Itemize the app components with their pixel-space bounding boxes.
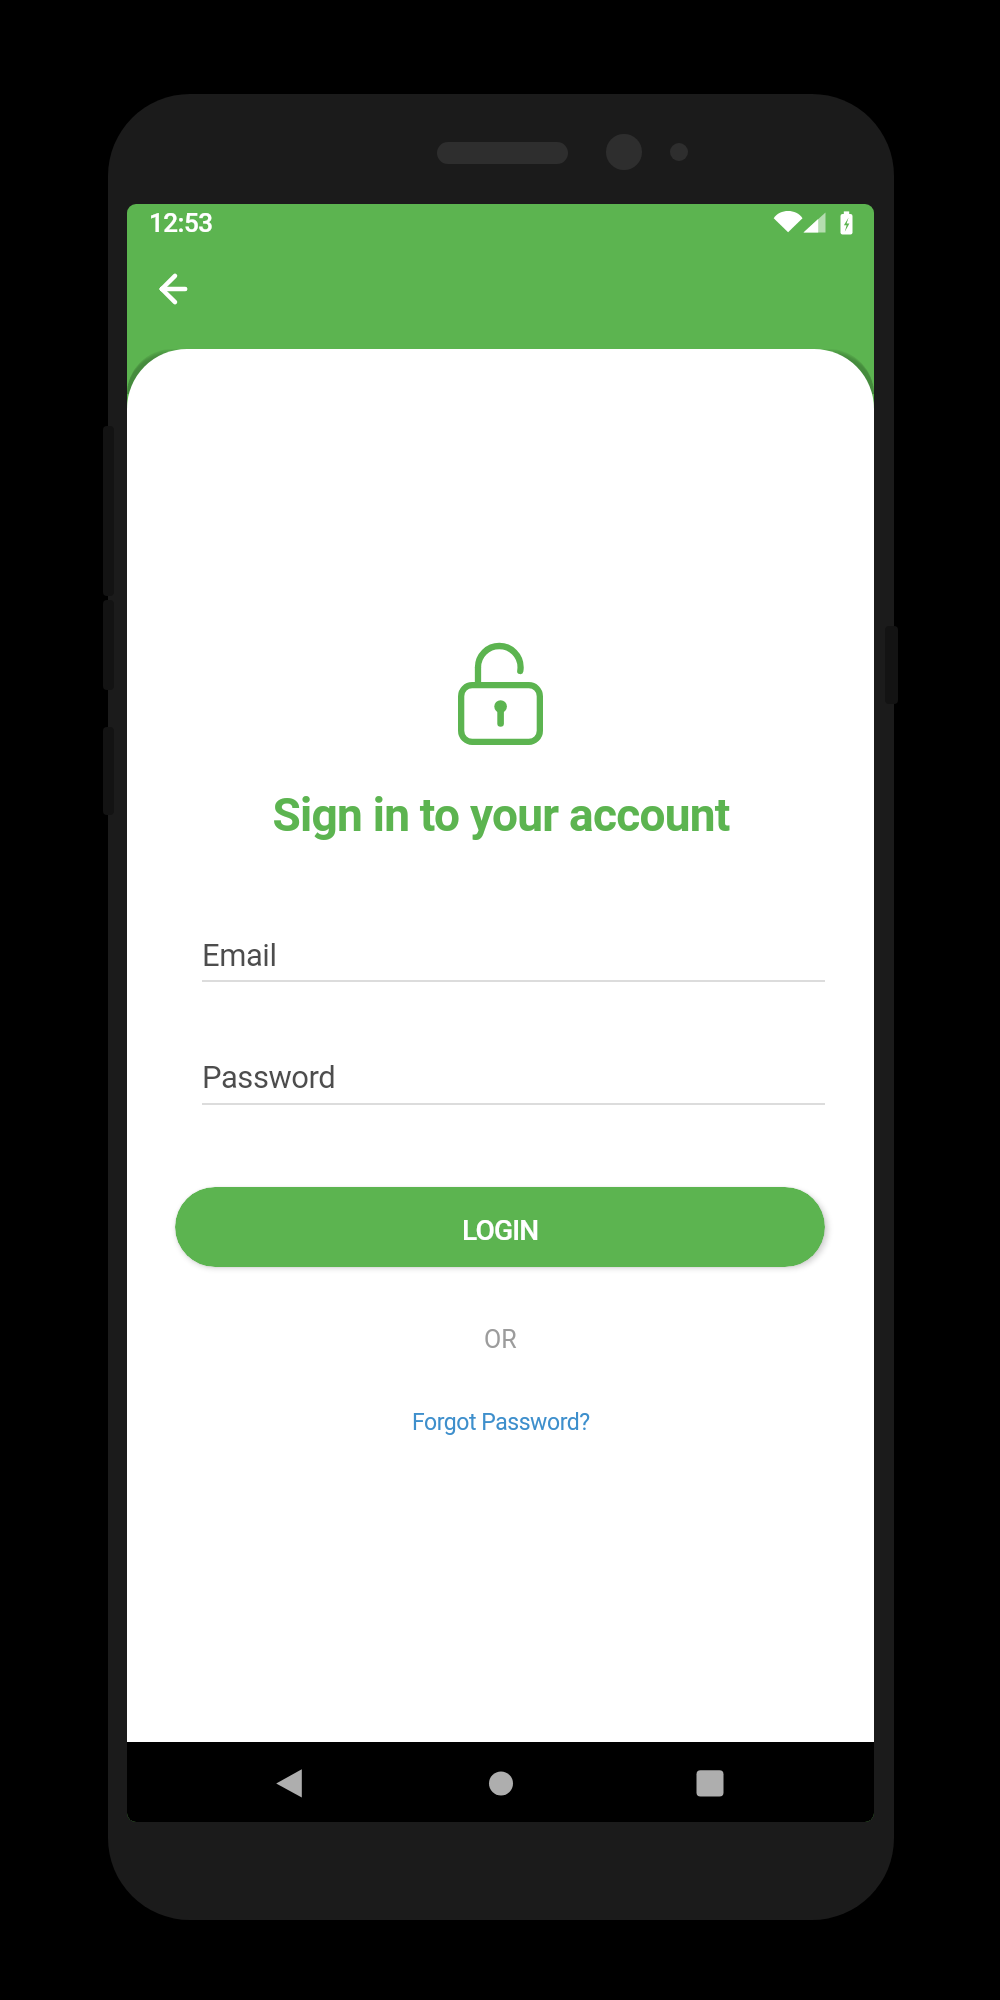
button[interactable]: Home bbox=[456, 1742, 546, 1822]
button[interactable]: Email bbox=[202, 915, 825, 982]
staticText: 12:53 bbox=[149, 208, 213, 238]
staticText: Forgot Password? bbox=[412, 1409, 590, 1436]
button[interactable]: Forgot Password? bbox=[412, 1409, 590, 1436]
button[interactable]: Recent apps bbox=[665, 1742, 755, 1822]
staticText: Email bbox=[202, 937, 277, 973]
staticText: LOGIN bbox=[462, 1214, 539, 1247]
staticText: Password bbox=[202, 1059, 336, 1095]
button[interactable]: LOGIN bbox=[175, 1187, 825, 1267]
button[interactable]: Back bbox=[136, 257, 202, 323]
button[interactable]: Back bbox=[244, 1742, 334, 1822]
button[interactable]: Password bbox=[202, 1037, 825, 1105]
staticText: OR bbox=[484, 1325, 517, 1354]
staticText: Sign in to your account bbox=[272, 788, 730, 842]
